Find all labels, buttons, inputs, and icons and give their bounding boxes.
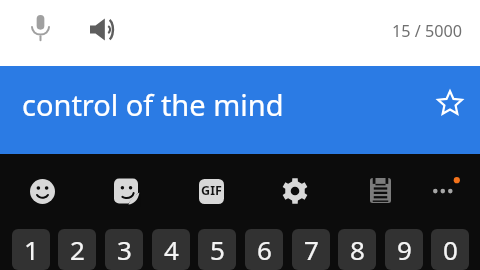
button[interactable]: 7 (292, 229, 330, 270)
button[interactable]: Stickers (106, 169, 150, 213)
staticText: GIF (201, 182, 222, 199)
button[interactable]: Clipboard (358, 168, 402, 212)
staticText: 7 (304, 232, 319, 267)
staticText: 15 / 5000 (392, 20, 462, 42)
button[interactable]: Settings (273, 169, 317, 213)
button[interactable]: 9 (385, 229, 423, 270)
button[interactable]: Listen (79, 7, 123, 51)
staticText: 5 (210, 232, 225, 267)
button[interactable]: 5 (198, 229, 236, 270)
button[interactable]: 6 (245, 229, 283, 270)
button[interactable]: More options (424, 165, 468, 209)
button[interactable]: 1 (12, 229, 50, 270)
button[interactable]: 4 (152, 229, 190, 270)
staticText: control of the mind (22, 85, 284, 124)
button[interactable]: control of the mind (0, 66, 480, 154)
button[interactable]: 0 (431, 229, 469, 270)
button[interactable]: 8 (338, 229, 376, 270)
button[interactable]: 3 (105, 229, 143, 270)
staticText: 8 (350, 232, 365, 267)
staticText: 0 (443, 232, 458, 267)
button[interactable]: 15 / 5000 (380, 14, 470, 46)
staticText: 2 (70, 232, 85, 267)
button[interactable]: Voice input (18, 6, 62, 50)
staticText: 1 (24, 232, 39, 267)
staticText: 3 (117, 232, 132, 267)
staticText: 4 (164, 232, 179, 267)
button[interactable]: GIF (189, 169, 233, 213)
button[interactable]: Emoji (20, 169, 64, 213)
staticText: 9 (397, 232, 412, 267)
button[interactable]: Save to phrasebook (427, 80, 472, 125)
button[interactable]: 2 (58, 229, 96, 270)
staticText: 6 (257, 232, 272, 267)
